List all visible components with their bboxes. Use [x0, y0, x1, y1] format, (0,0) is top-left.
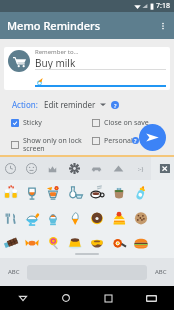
- staticText: Buy milk: [35, 56, 76, 70]
- button[interactable]: Smileys: [21, 157, 42, 180]
- button[interactable]: Emoji 22: [130, 230, 152, 255]
- staticText: ?: [114, 102, 117, 109]
- staticText: ABC: [155, 268, 167, 276]
- button[interactable]: Help: [132, 137, 139, 144]
- button[interactable]: Hamburger: [86, 230, 108, 255]
- button[interactable]: Clinking beer mugs: [0, 180, 21, 205]
- button[interactable]: Sticky: [10, 117, 43, 129]
- button[interactable]: ABC: [147, 258, 174, 286]
- button[interactable]: Food and drink: [63, 157, 85, 180]
- button[interactable]: Personal: [91, 135, 134, 147]
- button[interactable]: Shaved ice: [0, 205, 21, 230]
- button[interactable]: Custard: [21, 230, 42, 255]
- button[interactable]: Emoji 21: [108, 230, 130, 255]
- staticText: :-): [138, 165, 144, 173]
- button[interactable]: Recently used: [0, 157, 21, 180]
- button[interactable]: Switch keyboard: [140, 287, 162, 309]
- staticText: ABC: [8, 268, 20, 276]
- button[interactable]: ABC: [0, 258, 27, 286]
- staticText: Remember to...: [35, 48, 79, 56]
- button[interactable]: Home: [55, 287, 77, 309]
- button[interactable]: Emoticons: [129, 157, 151, 180]
- button[interactable]: Sake: [64, 180, 86, 205]
- button[interactable]: Honey pot: [42, 230, 64, 255]
- button[interactable]: Ice cream: [21, 205, 42, 230]
- button[interactable]: Cooking: [64, 230, 86, 255]
- button[interactable]: Nature: [42, 157, 63, 180]
- button[interactable]: Shortcake: [86, 205, 108, 230]
- button[interactable]: Baby bottle: [130, 180, 152, 205]
- button[interactable]: Wine glass: [21, 180, 42, 205]
- button[interactable]: Recent apps: [97, 287, 119, 309]
- button[interactable]: Back: [12, 287, 34, 309]
- button[interactable]: Send: [139, 124, 166, 151]
- staticText: Personal: [104, 136, 133, 146]
- button[interactable]: Chocolate bar: [130, 205, 152, 230]
- staticText: Show only on lock screen: [23, 136, 82, 153]
- button[interactable]: Lollipop: [0, 230, 21, 255]
- staticText: ?: [134, 137, 137, 144]
- button[interactable]: Cookie: [108, 205, 130, 230]
- staticText: Memo Reminders: [7, 18, 101, 33]
- button[interactable]: Doughnut: [64, 205, 86, 230]
- button[interactable]: Close on save: [91, 117, 150, 129]
- button[interactable]: Help: [111, 101, 119, 109]
- staticText: 7:18: [156, 1, 170, 11]
- button[interactable]: Action:: [12, 99, 119, 110]
- button[interactable]: Hot beverage: [86, 180, 108, 205]
- staticText: Action:: [12, 99, 38, 110]
- button[interactable]: Teacup: [108, 180, 130, 205]
- button[interactable]: Soft ice cream: [42, 205, 64, 230]
- button[interactable]: Objects: [107, 157, 129, 180]
- staticText: Sticky: [23, 118, 42, 128]
- button[interactable]: Travel: [85, 157, 107, 180]
- button[interactable]: More options: [152, 12, 174, 39]
- staticText: Close on save: [104, 118, 149, 128]
- staticText: Edit reminder: [44, 99, 96, 110]
- button[interactable]: Backspace: [151, 157, 174, 180]
- button[interactable]: Tropical drink: [42, 180, 64, 205]
- button[interactable]: Show only on lock screen: [10, 135, 83, 154]
